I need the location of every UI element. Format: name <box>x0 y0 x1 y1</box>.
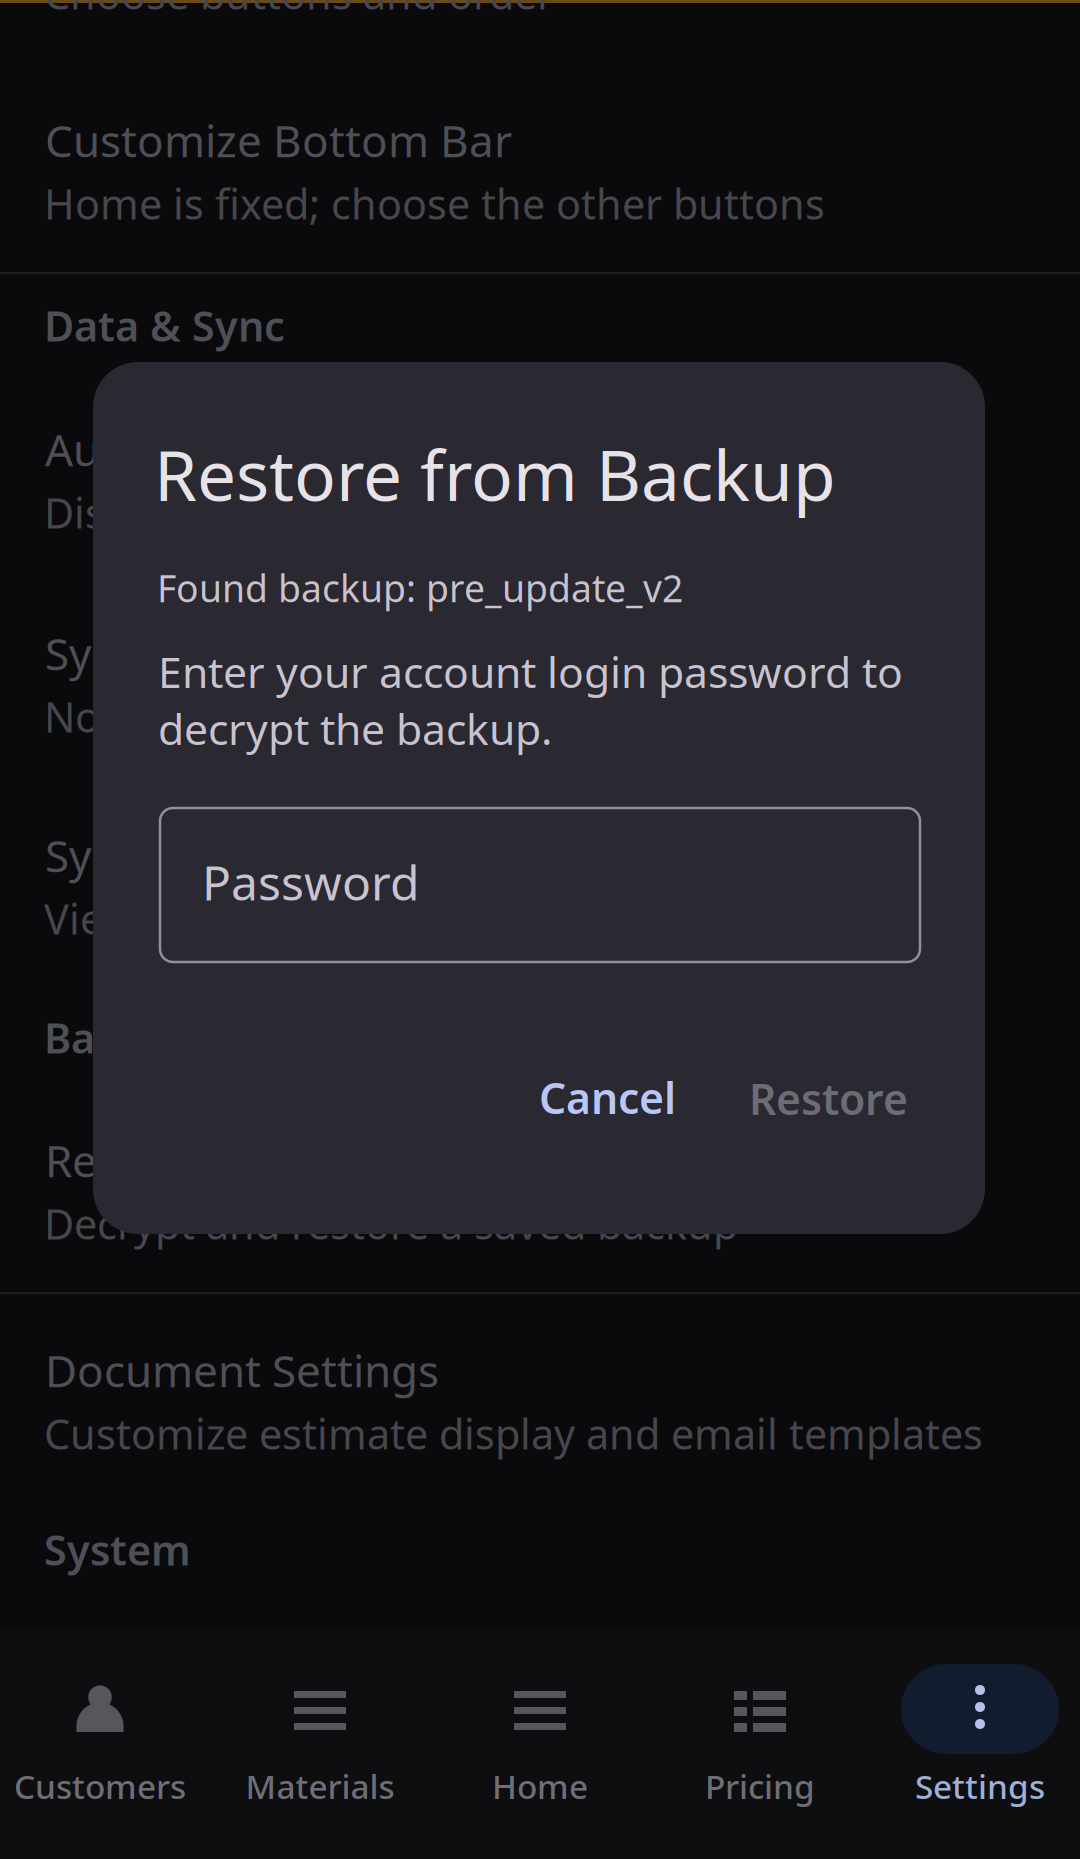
staticText: Home is fixed; choose the other buttons <box>44 176 825 231</box>
staticText: Auto Backup <box>45 420 306 478</box>
staticText: Home <box>492 1764 588 1808</box>
staticText: Password <box>202 850 420 914</box>
staticText: Sync Now <box>45 624 244 682</box>
button[interactable]: Materials <box>210 1664 430 1824</box>
staticText: Decrypt and restore a saved backup <box>44 1196 738 1251</box>
button[interactable]: Customize Bottom Bar <box>0 113 1080 245</box>
staticText: Customers <box>14 1764 186 1808</box>
button[interactable]: Restore from Backup <box>0 1133 1080 1265</box>
staticText: View past sync operations <box>44 891 546 946</box>
button[interactable]: Cancel <box>503 1046 689 1140</box>
button[interactable]: Customers <box>0 1664 210 1824</box>
staticText: Restore from Backup <box>45 1131 477 1189</box>
staticText: Enter your account login password to <box>158 643 903 700</box>
button[interactable]: Restore <box>718 1046 914 1140</box>
staticText: Backup <box>44 1010 192 1065</box>
staticText: Sync History <box>45 826 298 884</box>
button[interactable]: Document Settings <box>0 1343 1080 1475</box>
staticText: Materials <box>245 1764 394 1808</box>
staticText: Data & Sync <box>44 298 285 353</box>
button[interactable]: Settings <box>870 1664 1080 1824</box>
staticText: Customize Bottom Bar <box>45 111 512 169</box>
staticText: Cancel <box>539 1069 676 1126</box>
staticText: Disabled <box>44 485 212 540</box>
staticText: Choose buttons and order <box>44 0 554 21</box>
button[interactable]: Sync History <box>0 828 1080 960</box>
staticText: Pricing <box>705 1764 815 1808</box>
staticText: Customize estimate display and email tem… <box>44 1406 983 1461</box>
staticText: Settings <box>915 1764 1045 1808</box>
staticText: Not synced yet <box>44 689 331 744</box>
staticText: Found backup: pre_update_v2 <box>157 563 683 613</box>
staticText: Restore from Backup <box>154 428 836 520</box>
staticText: Document Settings <box>45 1341 439 1399</box>
button[interactable]: Auto Backup <box>0 422 1080 554</box>
staticText: Restore <box>749 1070 908 1127</box>
staticText: System <box>44 1522 191 1577</box>
staticText: decrypt the backup. <box>158 700 552 757</box>
button[interactable]: Home <box>430 1664 650 1824</box>
button[interactable]: Sync Now <box>0 626 1080 758</box>
button[interactable]: Pricing <box>650 1664 870 1824</box>
